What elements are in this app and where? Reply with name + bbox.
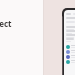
staticText: nect [0, 18, 12, 28]
button[interactable]: Contact [66, 59, 75, 64]
button[interactable] [66, 30, 75, 34]
button[interactable]: Contact [66, 44, 75, 49]
button[interactable] [66, 38, 75, 42]
button[interactable]: nect [0, 18, 20, 28]
button[interactable]: Contact [66, 54, 75, 59]
button[interactable]: Contact [66, 49, 75, 54]
button[interactable] [66, 34, 75, 38]
button[interactable] [66, 26, 75, 30]
